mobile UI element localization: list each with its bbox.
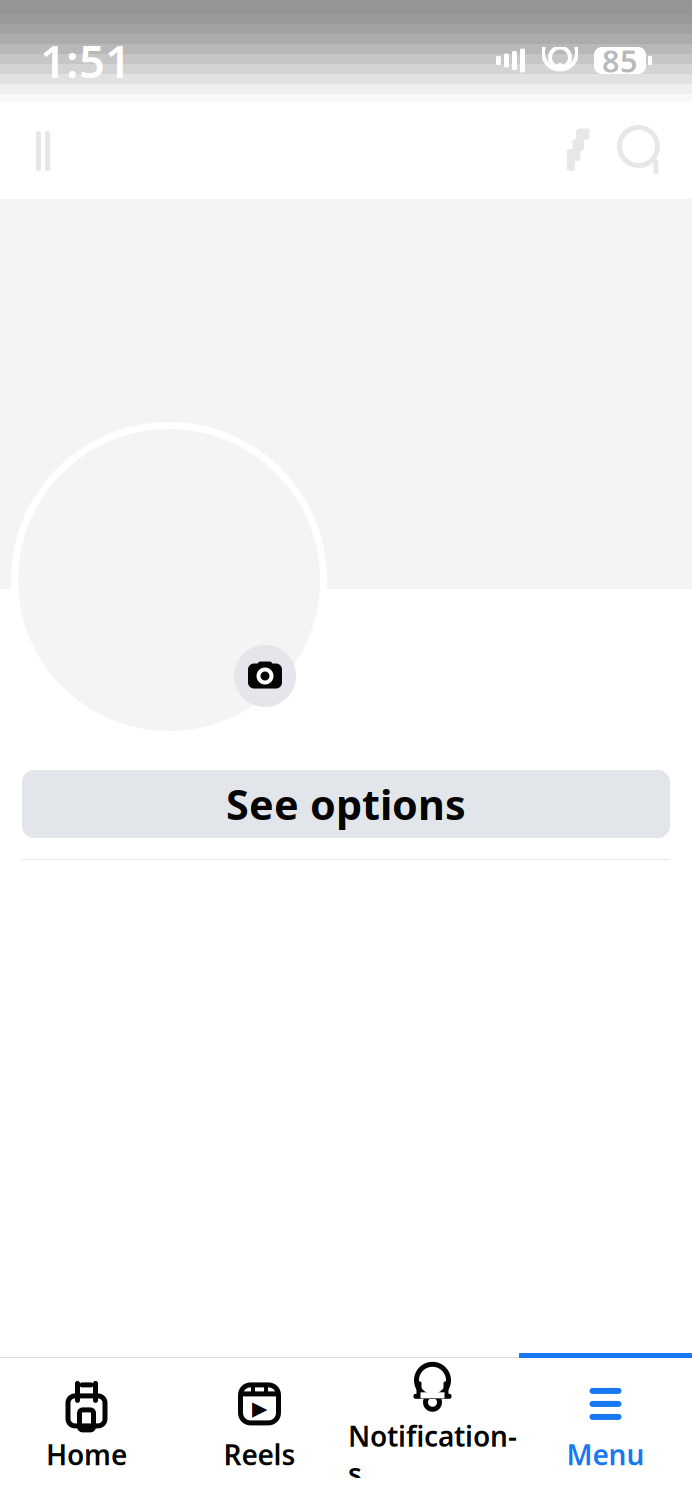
staticText: 85 <box>602 40 638 81</box>
staticText: ▶ <box>252 1397 267 1420</box>
staticText: 1:51 <box>40 30 131 91</box>
button[interactable]: Home <box>0 1358 173 1478</box>
button[interactable]: See options <box>22 770 670 838</box>
button[interactable]: Search <box>608 116 678 186</box>
staticText: Notifications <box>348 1417 517 1492</box>
button[interactable]: Menu <box>519 1358 692 1478</box>
button[interactable]: Back <box>8 116 78 186</box>
staticText: Menu <box>566 1436 644 1473</box>
button[interactable]: ▶ <box>173 1358 346 1478</box>
staticText: See options <box>226 777 466 831</box>
button[interactable]: Change profile picture <box>234 645 296 707</box>
staticText: Home <box>46 1436 127 1473</box>
button[interactable]: Edit <box>538 116 608 186</box>
button[interactable]: Notifications <box>346 1358 519 1478</box>
staticText: Reels <box>223 1436 295 1473</box>
